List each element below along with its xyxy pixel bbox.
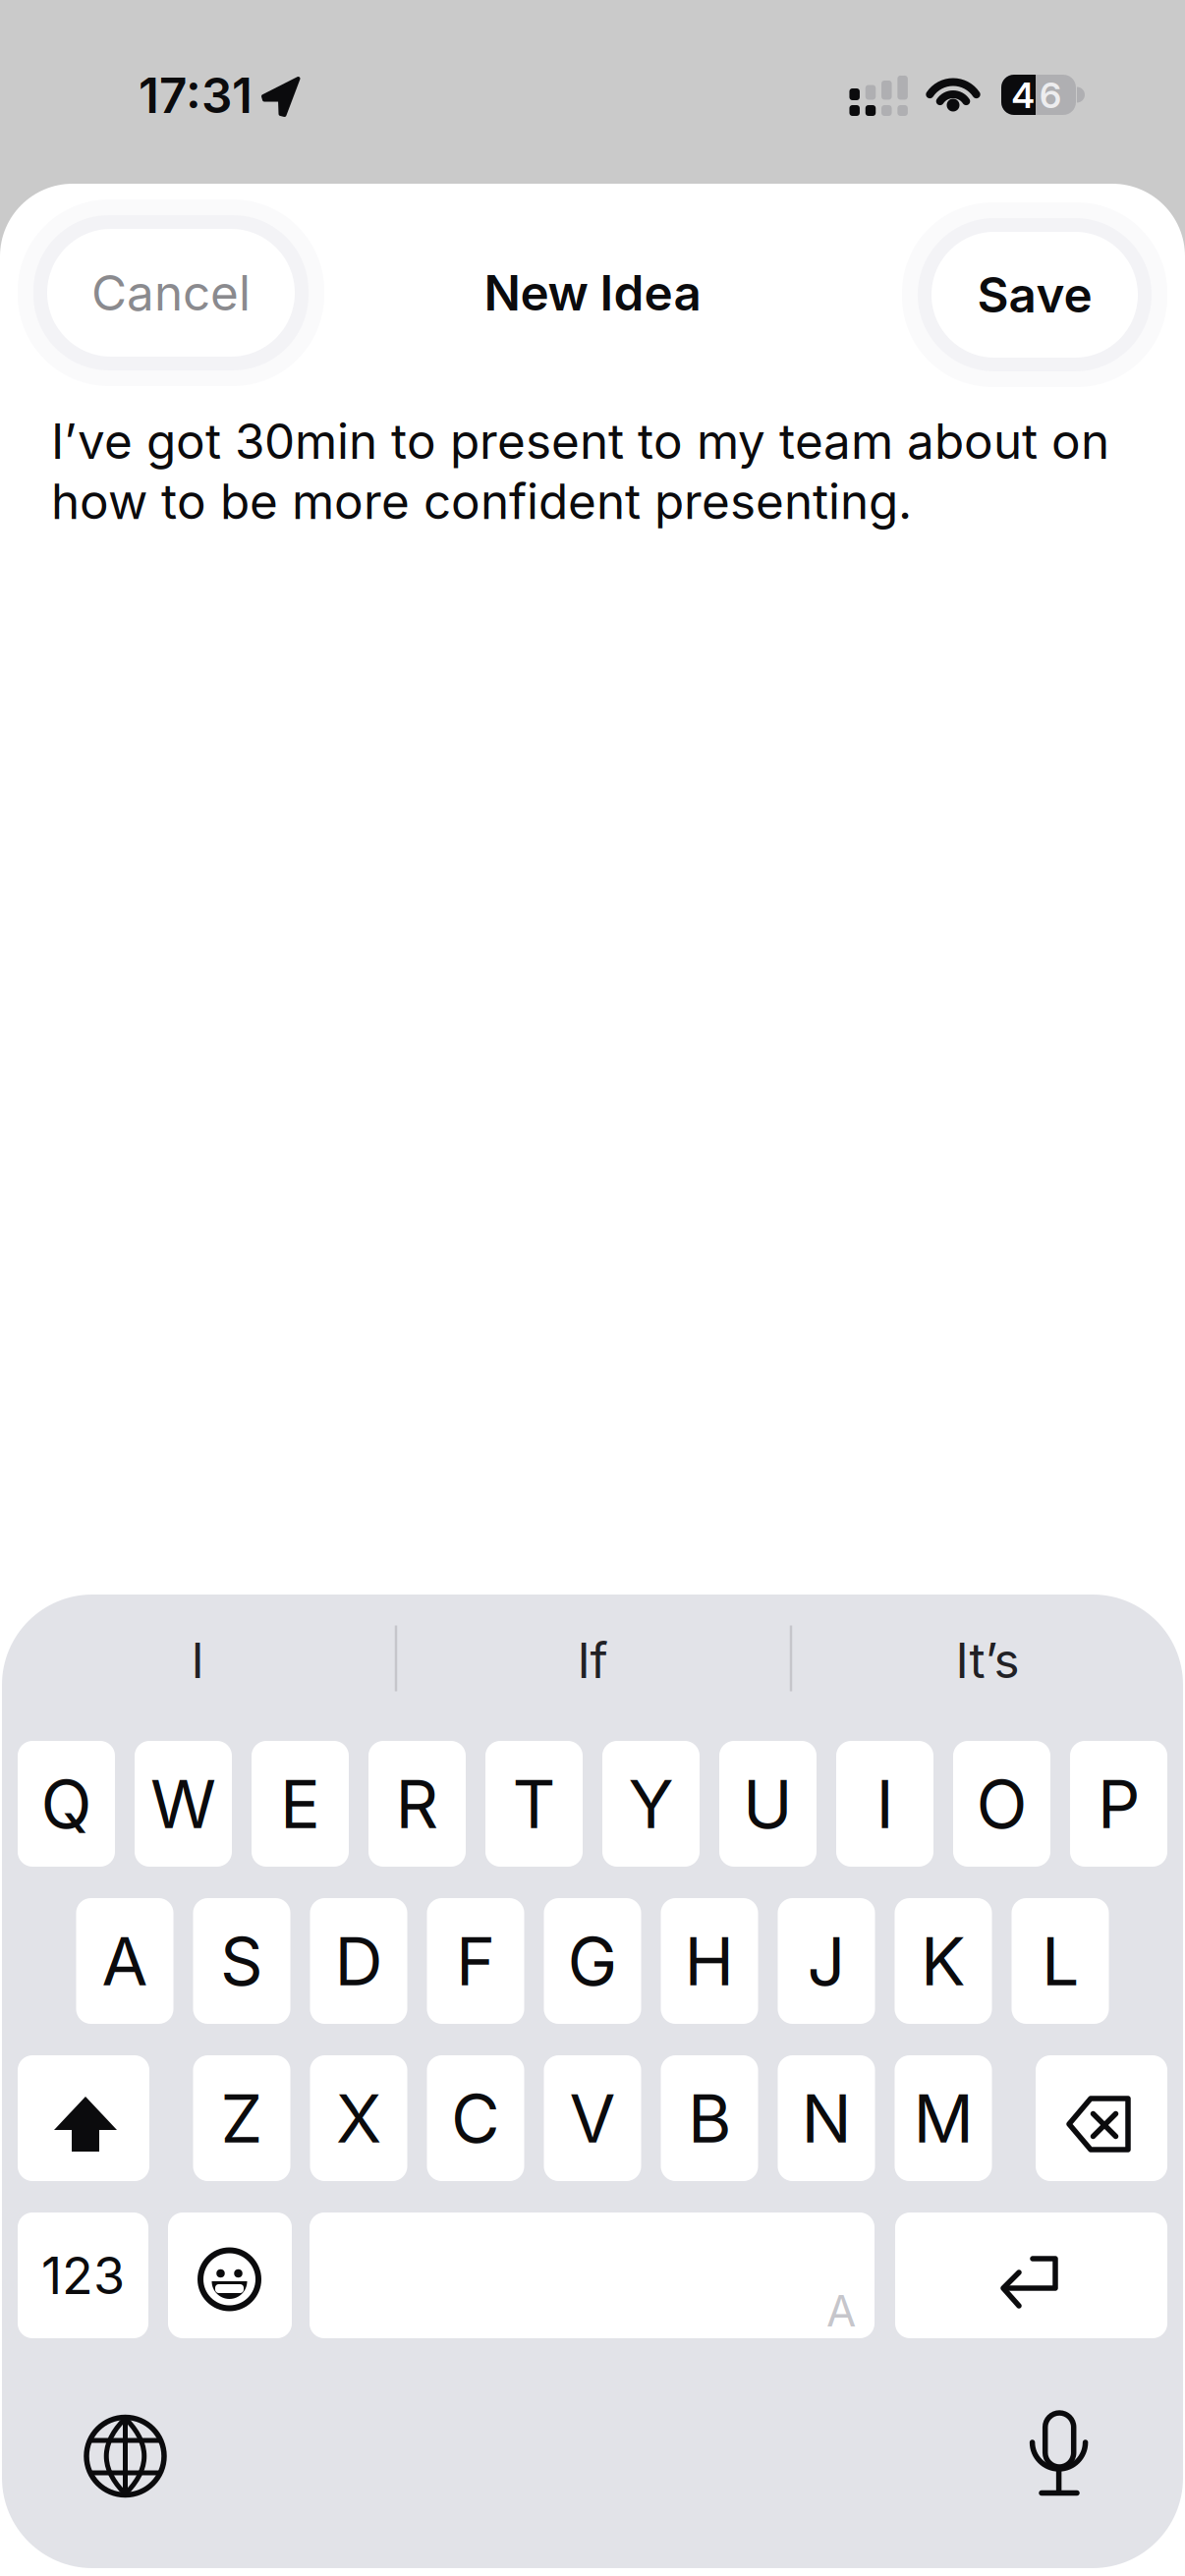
button[interactable]: Next keyboard [66, 2397, 184, 2515]
staticText: U [743, 1764, 793, 1843]
staticText: W [150, 1764, 216, 1843]
staticText: A [826, 2285, 856, 2336]
button[interactable]: F [427, 1898, 524, 2024]
staticText: E [280, 1764, 320, 1843]
button[interactable]: B [661, 2055, 758, 2181]
staticText: M [913, 2079, 973, 2158]
staticText: Q [41, 1764, 92, 1843]
button[interactable]: P [1070, 1741, 1167, 1867]
button[interactable]: O [953, 1741, 1050, 1867]
staticText: L [1042, 1922, 1079, 2000]
button[interactable]: T [485, 1741, 583, 1867]
button[interactable]: Delete [1036, 2055, 1167, 2181]
button[interactable]: Z [193, 2055, 290, 2181]
staticText: I [191, 1632, 204, 1689]
button[interactable]: Space [310, 2212, 875, 2338]
staticText: N [801, 2079, 851, 2158]
button[interactable]: V [544, 2055, 641, 2181]
button[interactable]: Emoji [168, 2212, 292, 2338]
staticText: D [335, 1922, 383, 2000]
button[interactable]: Save [931, 232, 1138, 358]
staticText: V [569, 2079, 616, 2158]
staticText: Z [221, 2079, 263, 2158]
button[interactable]: Dictation [1000, 2393, 1118, 2511]
staticText: J [807, 1922, 846, 2000]
button[interactable]: H [661, 1898, 758, 2024]
staticText: 4 [1012, 74, 1034, 116]
button[interactable]: J [778, 1898, 875, 2024]
staticText: K [921, 1922, 966, 2000]
button[interactable]: Return [895, 2212, 1167, 2338]
staticText: It’s [956, 1632, 1019, 1689]
button[interactable]: N [778, 2055, 875, 2181]
button[interactable]: U [719, 1741, 817, 1867]
staticText: I’ve got 30min to present to my team abo… [51, 413, 1109, 530]
button[interactable]: D [310, 1898, 407, 2024]
button[interactable]: Y [602, 1741, 700, 1867]
button[interactable]: S [193, 1898, 290, 2024]
staticText: Cancel [91, 264, 251, 321]
button[interactable]: Cancel [47, 229, 295, 357]
button[interactable]: E [252, 1741, 349, 1867]
staticText: G [567, 1922, 618, 2000]
staticText: S [220, 1922, 263, 2000]
staticText: If [577, 1632, 608, 1689]
button[interactable]: 123 [18, 2212, 148, 2338]
button[interactable]: M [895, 2055, 992, 2181]
staticText: O [976, 1764, 1027, 1843]
staticText: A [102, 1922, 148, 2000]
button[interactable]: L [1012, 1898, 1109, 2024]
staticText: 123 [41, 2245, 125, 2305]
button[interactable]: C [427, 2055, 524, 2181]
button[interactable]: A [76, 1898, 173, 2024]
button[interactable]: It’s [801, 1606, 1174, 1714]
staticText: P [1098, 1764, 1140, 1843]
button[interactable]: R [368, 1741, 466, 1867]
staticText: T [512, 1764, 556, 1843]
staticText: I [876, 1764, 894, 1843]
button[interactable]: W [135, 1741, 232, 1867]
button[interactable]: Shift [18, 2055, 149, 2181]
button[interactable]: K [895, 1898, 992, 2024]
staticText: 6 [1040, 74, 1061, 116]
staticText: New Idea [484, 264, 701, 321]
button[interactable]: I [836, 1741, 933, 1867]
button[interactable]: G [544, 1898, 641, 2024]
staticText: R [395, 1764, 439, 1843]
button[interactable]: X [310, 2055, 407, 2181]
staticText: Y [628, 1764, 674, 1843]
staticText: H [684, 1922, 734, 2000]
staticText: Save [977, 266, 1092, 323]
button[interactable]: Q [18, 1741, 115, 1867]
button[interactable]: If [406, 1606, 779, 1714]
staticText: B [688, 2079, 731, 2158]
staticText: F [456, 1922, 495, 2000]
staticText: X [336, 2079, 381, 2158]
button[interactable]: I [11, 1606, 384, 1714]
staticText: C [451, 2079, 500, 2158]
staticText: 17:31 [139, 67, 253, 124]
